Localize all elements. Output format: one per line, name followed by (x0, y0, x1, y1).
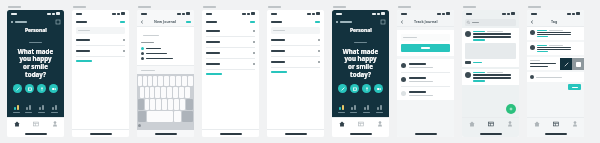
button[interactable] (401, 44, 450, 52)
button[interactable]: Home (527, 118, 546, 130)
button[interactable] (462, 28, 519, 67)
button[interactable] (141, 47, 190, 50)
button[interactable]: Back (530, 20, 534, 24)
button[interactable]: Video (374, 84, 383, 93)
button[interactable]: Search (271, 27, 320, 34)
button[interactable]: Profile (565, 118, 584, 130)
button[interactable]: Back (140, 20, 144, 24)
button[interactable] (202, 37, 259, 47)
button[interactable]: Back (400, 20, 404, 24)
button[interactable]: Stat 3 (48, 105, 61, 113)
button[interactable]: Voice (37, 84, 46, 93)
button[interactable] (267, 46, 324, 56)
button[interactable]: Write (338, 84, 347, 93)
button[interactable]: Stat 2 (35, 105, 48, 113)
button[interactable] (162, 99, 167, 110)
button[interactable]: Photo (25, 84, 34, 93)
button[interactable]: Home (7, 118, 26, 130)
button[interactable] (150, 87, 154, 98)
button[interactable]: Add (506, 104, 516, 114)
button[interactable] (156, 99, 161, 110)
button[interactable] (397, 73, 454, 86)
button[interactable]: Stat 0 (335, 105, 347, 113)
button[interactable]: Profile (45, 118, 64, 130)
button[interactable] (155, 87, 160, 98)
button[interactable]: Stat 0 (10, 105, 22, 113)
button[interactable]: Date (336, 21, 352, 23)
button[interactable] (76, 60, 125, 62)
button[interactable] (150, 99, 155, 110)
button[interactable] (202, 48, 259, 58)
button[interactable] (182, 76, 187, 86)
button[interactable] (168, 99, 173, 110)
button[interactable] (140, 87, 144, 98)
button[interactable] (148, 76, 152, 86)
button[interactable] (145, 87, 149, 98)
button[interactable] (186, 21, 191, 23)
button[interactable]: Search (76, 27, 125, 34)
button[interactable]: Feed (351, 118, 370, 130)
button[interactable] (143, 76, 147, 86)
button[interactable]: Stat 1 (347, 105, 360, 113)
button[interactable] (180, 99, 185, 110)
button[interactable] (462, 69, 519, 85)
button[interactable]: Select (572, 58, 584, 70)
button[interactable] (271, 71, 320, 73)
button[interactable] (397, 59, 454, 72)
button[interactable]: Title field (141, 31, 190, 39)
button[interactable] (530, 75, 581, 79)
button[interactable] (185, 87, 190, 98)
button[interactable]: Photo (350, 84, 359, 93)
button[interactable] (202, 59, 259, 69)
button[interactable] (141, 52, 190, 55)
button[interactable] (267, 57, 324, 67)
button[interactable] (138, 76, 142, 86)
button[interactable] (72, 46, 129, 56)
button[interactable]: Stat 3 (373, 105, 386, 113)
button[interactable] (164, 76, 169, 86)
button[interactable] (206, 73, 255, 75)
button[interactable] (153, 76, 157, 86)
button[interactable]: More (56, 20, 60, 24)
button[interactable] (161, 87, 166, 98)
button[interactable] (176, 76, 181, 86)
button[interactable] (179, 87, 184, 98)
button[interactable]: Stat 1 (22, 105, 35, 113)
button[interactable] (170, 76, 175, 86)
button[interactable]: Feed (546, 118, 565, 130)
button[interactable] (173, 87, 178, 98)
button[interactable]: Expand (560, 58, 572, 70)
button[interactable]: Write (13, 84, 22, 93)
button[interactable] (527, 42, 584, 55)
button[interactable]: Profile (500, 118, 519, 130)
button[interactable]: Feed (481, 118, 500, 130)
button[interactable]: Search (465, 19, 516, 26)
button[interactable]: Home (462, 118, 481, 130)
button[interactable] (158, 76, 163, 86)
button[interactable] (267, 35, 324, 45)
button[interactable]: Code field (401, 34, 450, 41)
button[interactable] (397, 87, 454, 100)
button[interactable]: Feed (26, 118, 45, 130)
button[interactable] (174, 99, 179, 110)
button[interactable] (72, 35, 129, 45)
button[interactable] (141, 57, 190, 60)
button[interactable]: Video (49, 84, 58, 93)
button[interactable]: Stat 2 (360, 105, 373, 113)
button[interactable]: Home (332, 118, 351, 130)
button[interactable]: More (381, 20, 385, 24)
button[interactable] (568, 84, 581, 90)
button[interactable]: Voice (362, 84, 371, 93)
button[interactable] (145, 99, 149, 110)
button[interactable]: Profile (370, 118, 389, 130)
button[interactable] (202, 26, 259, 36)
button[interactable] (167, 87, 172, 98)
button[interactable] (188, 76, 193, 86)
button[interactable] (527, 27, 584, 40)
